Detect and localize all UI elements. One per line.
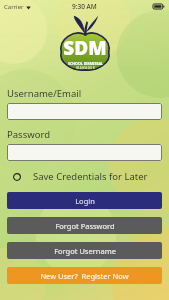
button[interactable]: Forgot Username (7, 242, 162, 259)
staticText: Username/Email (7, 87, 82, 100)
button[interactable]: Save Credentials for Later (7, 170, 162, 183)
staticText: Carrier (4, 3, 24, 11)
staticText: M A N A G E R (76, 66, 95, 70)
button[interactable]: New User? Register Now (7, 267, 162, 284)
staticText: Forgot Password (55, 221, 115, 231)
button[interactable] (7, 103, 162, 120)
button[interactable]: Forgot Password (7, 217, 162, 234)
staticText: SCHOOL DISMISSAL (68, 61, 103, 66)
staticText: Save Credentials for Later (33, 170, 148, 183)
staticText: Forgot Username (54, 246, 116, 256)
staticText: Password (7, 128, 50, 141)
staticText: SDM (63, 35, 107, 61)
staticText: 9:30 AM (72, 2, 97, 11)
staticText: Login (75, 196, 95, 206)
staticText: New User? Register Now (40, 271, 129, 281)
button[interactable] (7, 144, 162, 161)
button[interactable]: Login (7, 192, 162, 209)
